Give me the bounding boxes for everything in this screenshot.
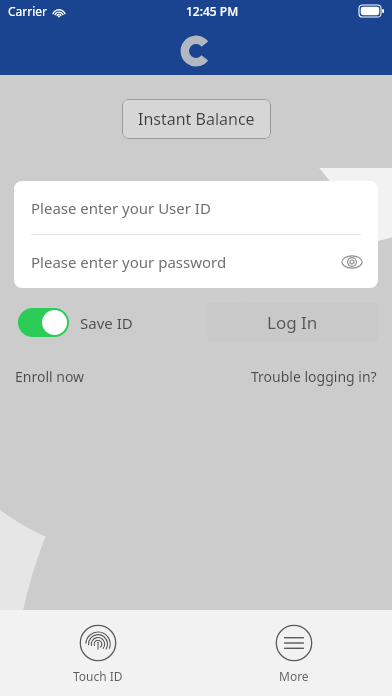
staticText: Enroll now (15, 367, 85, 386)
button[interactable]: Instant Balance (122, 99, 271, 139)
staticText: Instant Balance (138, 108, 255, 130)
button[interactable]: More (196, 610, 392, 684)
staticText: More (279, 668, 309, 684)
button[interactable]: Enroll now (15, 367, 85, 386)
button[interactable]: Touch ID (0, 610, 196, 684)
button[interactable]: Trouble logging in? (251, 367, 377, 386)
staticText: Save ID (80, 313, 133, 333)
staticText: Please enter your User ID (31, 198, 211, 218)
staticText: Please enter your password (31, 252, 227, 272)
button[interactable]: Please enter your User ID (14, 181, 378, 234)
staticText: 12:45 PM (186, 3, 239, 19)
staticText: Log In (267, 311, 318, 334)
button[interactable]: Save ID (18, 308, 133, 337)
staticText: Carrier (8, 3, 48, 19)
button[interactable]: Please enter your password (14, 235, 378, 288)
button[interactable]: Show password (336, 246, 368, 278)
staticText: Trouble logging in? (251, 367, 377, 386)
button[interactable]: Log In (207, 303, 378, 341)
staticText: Touch ID (73, 668, 123, 684)
